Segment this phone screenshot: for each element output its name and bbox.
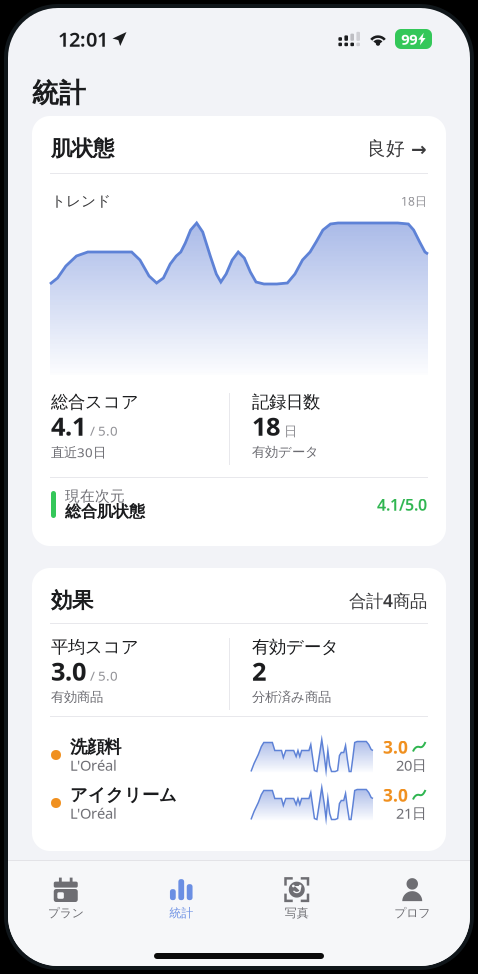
- staticText: 3.0: [383, 735, 408, 758]
- staticText: 18日: [401, 193, 427, 209]
- staticText: 写真: [285, 906, 309, 920]
- staticText: アイクリーム: [70, 784, 177, 806]
- staticText: 統計: [32, 77, 86, 109]
- button[interactable]: アイクリーム: [51, 779, 427, 827]
- staticText: L'Oréal: [70, 803, 117, 823]
- staticText: 日: [284, 423, 297, 440]
- staticText: 2: [252, 654, 266, 688]
- staticText: 直近30日: [51, 443, 106, 461]
- staticText: 18: [252, 409, 280, 443]
- staticText: 良好 →: [367, 137, 427, 160]
- staticText: 肌状態: [51, 135, 114, 162]
- button[interactable]: 肌状態: [32, 116, 446, 173]
- staticText: 4.1: [51, 409, 86, 443]
- button[interactable]: 統計: [123, 876, 239, 921]
- staticText: / 5.0: [90, 667, 118, 684]
- staticText: 分析済み商品: [252, 689, 331, 705]
- staticText: 総合肌状態: [65, 502, 145, 521]
- staticText: L'Oréal: [70, 755, 117, 775]
- staticText: プロフ: [394, 906, 430, 920]
- staticText: 現在次元: [65, 487, 125, 505]
- staticText: 有効商品: [51, 689, 103, 705]
- staticText: 3.0: [51, 654, 86, 688]
- staticText: 総合スコア: [51, 391, 139, 413]
- staticText: 12:01: [58, 26, 108, 52]
- staticText: 有効データ: [252, 636, 339, 658]
- staticText: 4.1/5.0: [377, 494, 427, 515]
- staticText: 21日: [396, 803, 427, 823]
- staticText: 統計: [169, 906, 193, 920]
- button[interactable]: プロフ: [354, 876, 470, 921]
- staticText: 3.0: [383, 783, 408, 806]
- staticText: 効果: [51, 587, 93, 614]
- staticText: 平均スコア: [51, 636, 139, 658]
- staticText: トレンド: [51, 192, 111, 210]
- staticText: 合計4商品: [349, 589, 427, 612]
- staticText: 99: [401, 29, 417, 49]
- staticText: 20日: [396, 755, 427, 775]
- button[interactable]: プラン: [8, 876, 123, 921]
- button[interactable]: 洗顔料: [51, 731, 427, 779]
- button[interactable]: 写真: [239, 876, 354, 921]
- staticText: 有効データ: [252, 444, 319, 460]
- staticText: 記録日数: [252, 391, 320, 413]
- staticText: / 5.0: [90, 422, 118, 439]
- staticText: プラン: [48, 906, 84, 920]
- staticText: 洗顔料: [70, 736, 121, 758]
